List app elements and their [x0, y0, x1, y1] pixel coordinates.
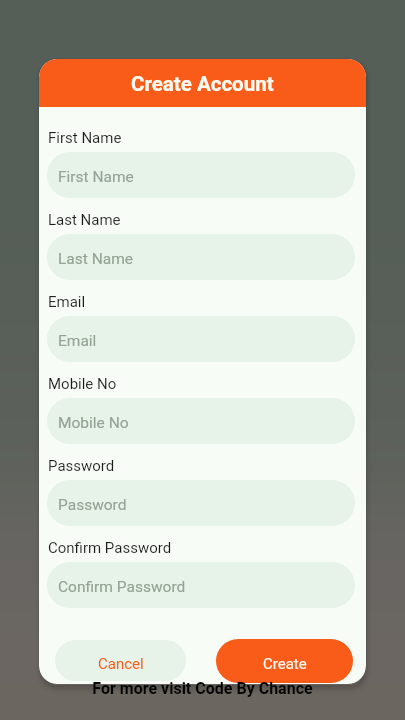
staticText: For more visit Code By Chance: [0, 679, 405, 698]
staticText: Create: [263, 655, 307, 673]
staticText: Mobile No: [48, 375, 117, 393]
button[interactable]: Last Name: [47, 234, 355, 280]
button[interactable]: First Name: [47, 152, 355, 198]
staticText: Password: [48, 457, 115, 475]
button[interactable]: Mobile No: [47, 398, 355, 444]
button[interactable]: Email: [47, 316, 355, 362]
staticText: Cancel: [98, 655, 144, 673]
staticText: Email: [58, 332, 97, 350]
button[interactable]: Cancel: [55, 640, 186, 681]
staticText: First Name: [58, 168, 134, 186]
button[interactable]: Password: [47, 480, 355, 526]
staticText: Password: [58, 496, 127, 514]
staticText: Create Account: [131, 72, 274, 96]
staticText: First Name: [48, 129, 122, 147]
staticText: Confirm Password: [58, 578, 186, 596]
staticText: Mobile No: [58, 414, 129, 432]
staticText: Email: [48, 293, 86, 311]
staticText: Last Name: [58, 250, 133, 268]
button[interactable]: Confirm Password: [47, 562, 355, 608]
staticText: Confirm Password: [48, 539, 172, 557]
button[interactable]: Create: [216, 639, 353, 683]
staticText: Last Name: [48, 211, 121, 229]
